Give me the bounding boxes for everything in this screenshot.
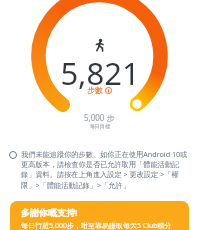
- staticText: 步數: [87, 85, 103, 95]
- other: Steps: [93, 39, 106, 52]
- button[interactable]: 多謝你嘅支持!: [10, 201, 189, 230]
- button[interactable]: Steps: [0, 0, 199, 135]
- button[interactable]: 我們未能追蹤你的步數。如你正在使用Android 10或更高版本，請檢查你是否已…: [9, 149, 190, 190]
- staticText: 5,821: [60, 52, 140, 94]
- staticText: 多謝你嘅支持!: [21, 206, 78, 218]
- button[interactable]: 步數: [87, 85, 112, 95]
- staticText: 我們未能追蹤你的步數。如你正在使用Android 10或更高版本，請檢查你是否已…: [21, 149, 190, 190]
- staticText: 每日行超5,000步，咁至靠易賺取每天5 Club積分: [21, 221, 172, 230]
- staticText: 5,000 步: [84, 112, 115, 123]
- staticText: 每日目標: [90, 123, 110, 129]
